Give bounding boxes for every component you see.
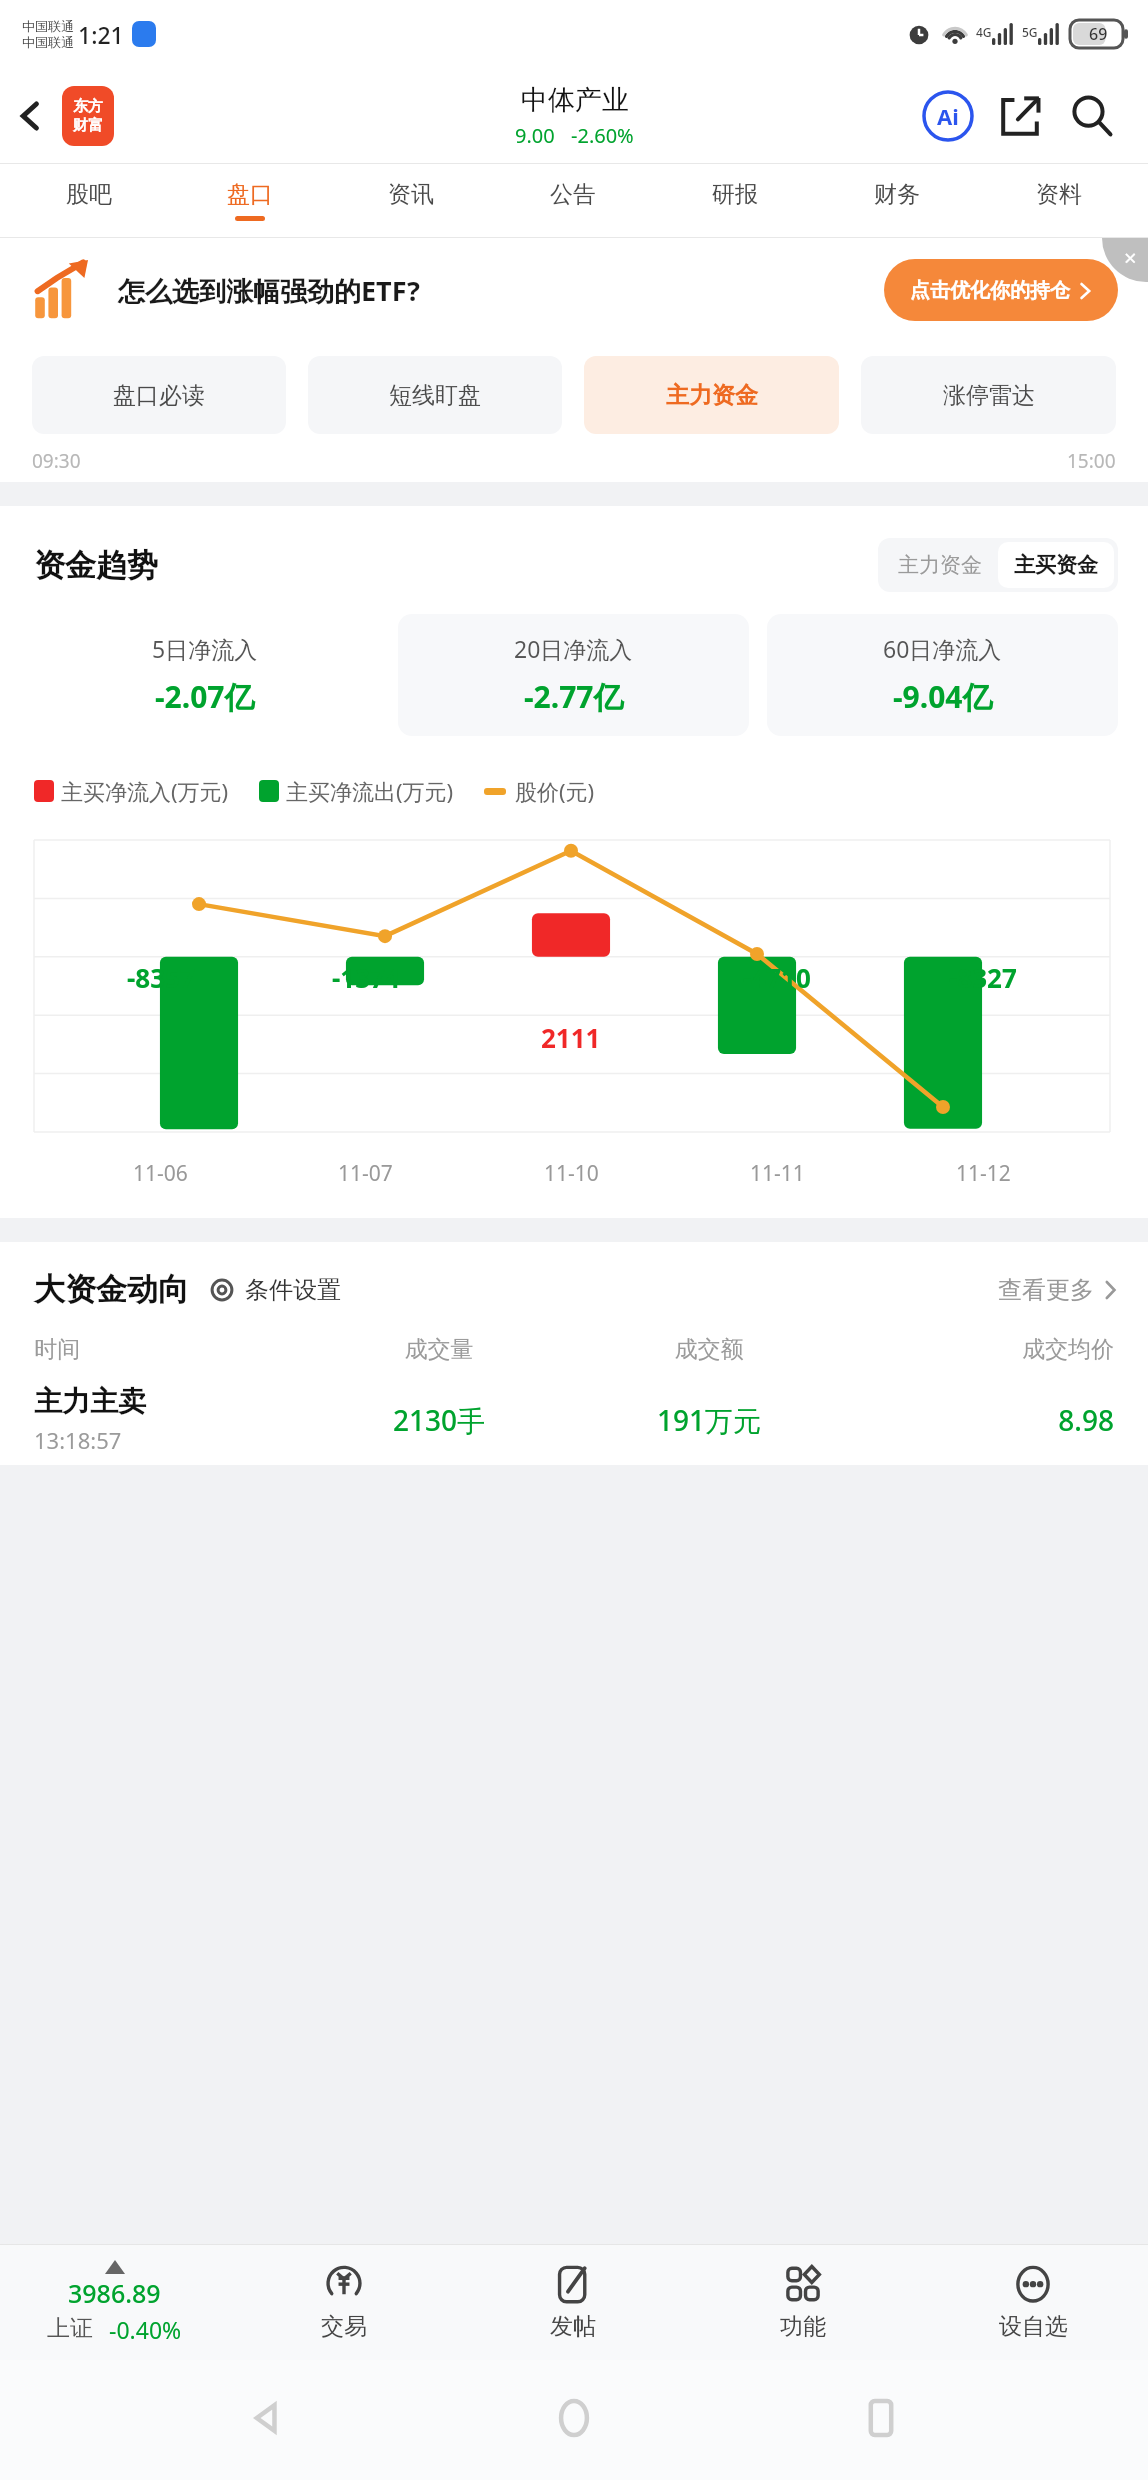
button[interactable]: 条件设置 [207, 1275, 341, 1305]
button[interactable]: AI [912, 80, 984, 152]
staticText: 点击优化你的持仓 [910, 278, 1070, 303]
button[interactable]: 盘口 [169, 163, 330, 238]
staticText: 研报 [712, 180, 758, 209]
staticText: 1:21 [78, 19, 124, 50]
button[interactable]: 60日净流入 [767, 614, 1118, 736]
staticText: 成交量 [304, 1335, 574, 1364]
button[interactable]: Recents [841, 2378, 921, 2458]
staticText: 主力资金 [666, 381, 758, 410]
staticText: 中国联通 [22, 18, 74, 34]
staticText: 13:18:57 [34, 1425, 122, 1455]
staticText: 成交均价 [844, 1335, 1114, 1364]
staticText: -1374 [332, 960, 400, 995]
button[interactable]: 主买资金 [998, 542, 1114, 588]
staticText: 11-12 [956, 1159, 1011, 1188]
staticText: 公告 [550, 180, 596, 209]
button[interactable]: 20日净流入 [398, 614, 749, 736]
button[interactable]: 3986.89 [0, 2245, 229, 2360]
staticText: 中体产业 [521, 83, 629, 117]
staticText: 主买净流出(万元) [286, 776, 454, 806]
staticText: Ai [937, 101, 959, 131]
button[interactable]: 涨停雷达 [861, 356, 1116, 434]
staticText: 资料 [1036, 180, 1082, 209]
staticText: 财富 [73, 116, 103, 135]
button[interactable]: 资料 [978, 163, 1140, 238]
staticText: 条件设置 [245, 1275, 341, 1305]
staticText: 中国联通 [22, 34, 74, 50]
staticText: 8.98 [844, 1401, 1114, 1439]
staticText: -8327 [949, 960, 1017, 995]
staticText: 怎么选到涨幅强劲的ETF? [118, 272, 420, 309]
staticText: 09:30 [32, 448, 81, 474]
staticText: 3986.89 [68, 2276, 161, 2310]
staticText: 盘口 [227, 180, 273, 209]
staticText: 资讯 [388, 180, 434, 209]
staticText: 短线盯盘 [389, 381, 481, 410]
button[interactable]: Close [1102, 238, 1148, 282]
staticText: 主买净流入(万元) [61, 776, 229, 806]
staticText: 主买资金 [1014, 552, 1098, 578]
staticText: 191万元 [574, 1401, 844, 1439]
staticText: 11-11 [750, 1159, 805, 1188]
staticText: 主力资金 [898, 552, 982, 578]
staticText: 2130手 [304, 1401, 574, 1439]
staticText: -2.60% [571, 122, 634, 149]
button[interactable]: 设自选 [918, 2245, 1148, 2360]
button[interactable]: 资讯 [330, 163, 492, 238]
staticText: -9.04亿 [893, 676, 993, 717]
button[interactable]: 公告 [492, 163, 654, 238]
button[interactable]: 功能 [688, 2245, 918, 2360]
button[interactable]: Share [984, 80, 1056, 152]
staticText: 资金趋势 [34, 546, 158, 585]
button[interactable]: 主力资金 [882, 542, 998, 588]
staticText: 股吧 [66, 180, 112, 209]
staticText: 东方 [73, 97, 103, 116]
button[interactable]: 研报 [654, 163, 816, 238]
staticText: 11-06 [133, 1159, 188, 1188]
staticText: 大资金动向 [34, 1270, 189, 1309]
staticText: -0.40% [109, 2314, 182, 2345]
staticText: 股价(元) [515, 776, 595, 806]
staticText: 69 [1089, 23, 1108, 45]
button[interactable]: 财务 [816, 163, 978, 238]
button[interactable]: 东方财富 [62, 86, 114, 146]
staticText: 时间 [34, 1335, 304, 1364]
staticText: 涨停雷达 [943, 381, 1035, 410]
staticText: -8357 [127, 960, 195, 995]
button[interactable]: 5日净流入 [30, 614, 380, 736]
button[interactable]: 查看更多 [998, 1275, 1118, 1305]
button[interactable]: Back [0, 76, 62, 156]
staticText: 20日净流入 [514, 633, 633, 664]
button[interactable]: Home [534, 2378, 614, 2458]
staticText: 15:00 [1067, 448, 1116, 474]
button[interactable]: 主力资金 [584, 356, 839, 434]
staticText: 4G [976, 24, 992, 40]
button[interactable]: 点击优化你的持仓 [884, 259, 1118, 321]
staticText: 盘口必读 [113, 381, 205, 410]
staticText: 交易 [321, 2312, 367, 2341]
button[interactable]: Back [227, 2378, 307, 2458]
staticText: -4710 [743, 960, 811, 995]
staticText: 5日净流入 [152, 633, 258, 664]
staticText: -2.07亿 [155, 676, 255, 717]
staticText: 成交额 [574, 1335, 844, 1364]
button[interactable]: 发帖 [458, 2245, 688, 2360]
staticText: 60日净流入 [883, 633, 1002, 664]
button[interactable]: 短线盯盘 [308, 356, 562, 434]
staticText: 上证 [47, 2314, 93, 2343]
staticText: 9.00 [515, 122, 555, 149]
staticText: 财务 [874, 180, 920, 209]
staticText: 主力主卖 [34, 1384, 146, 1419]
staticText: 2111 [541, 1020, 601, 1055]
staticText: -2.77亿 [524, 676, 624, 717]
button[interactable]: 股吧 [8, 163, 169, 238]
button[interactable]: 交易 [229, 2245, 458, 2360]
button[interactable]: Search [1056, 80, 1128, 152]
button[interactable]: 盘口必读 [32, 356, 286, 434]
staticText: 11-10 [544, 1159, 599, 1188]
staticText: 11-07 [338, 1159, 393, 1188]
staticText: 功能 [780, 2312, 826, 2341]
staticText: 查看更多 [998, 1275, 1094, 1305]
staticText: 5G [1022, 24, 1038, 40]
staticText: 设自选 [999, 2312, 1068, 2341]
